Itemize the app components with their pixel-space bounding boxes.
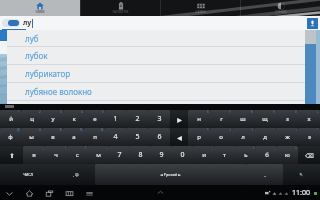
staticText: лубрикатор xyxy=(25,68,71,79)
staticText: 🔍 xyxy=(299,173,304,177)
staticText: т xyxy=(223,151,226,159)
button[interactable]: г xyxy=(210,110,232,128)
button[interactable]: 🔍 xyxy=(283,164,320,185)
button[interactable]: Recent apps xyxy=(43,187,55,199)
button[interactable]: о xyxy=(210,128,232,146)
staticText: ! xyxy=(65,146,66,150)
button[interactable]: х xyxy=(298,110,320,128)
button[interactable]: 5 xyxy=(126,128,148,146)
button[interactable]: Home xyxy=(23,187,35,199)
button[interactable]: н xyxy=(188,110,210,128)
staticText: 8 xyxy=(251,110,253,114)
button[interactable]: п xyxy=(84,128,105,146)
button[interactable]: 9 xyxy=(151,146,172,164)
button[interactable]: ч xyxy=(45,146,67,164)
staticText: ц xyxy=(30,115,34,123)
staticText: 7 xyxy=(229,110,231,114)
staticText: ж xyxy=(285,133,290,141)
button[interactable]: 1 xyxy=(105,110,126,128)
staticText: я xyxy=(32,151,36,159)
button[interactable]: у xyxy=(42,110,63,128)
button[interactable]: 8 xyxy=(130,146,151,164)
staticText: , xyxy=(212,146,213,150)
button[interactable]: ь xyxy=(235,146,256,164)
button[interactable]: HOME xyxy=(0,0,80,16)
button[interactable]: с xyxy=(67,146,88,164)
staticText: д xyxy=(263,133,267,141)
button[interactable]: Screenshot xyxy=(63,187,75,199)
button[interactable]: GAMES xyxy=(161,0,240,16)
button[interactable]: луб xyxy=(7,30,305,46)
button[interactable]: е xyxy=(84,110,105,128)
button[interactable]: р xyxy=(188,128,210,146)
button[interactable]: лубок xyxy=(7,47,305,64)
button[interactable]: й xyxy=(0,110,21,128)
button[interactable]: л xyxy=(232,128,254,146)
staticText: б xyxy=(265,151,269,159)
button[interactable]: Input language xyxy=(2,19,20,27)
button[interactable]: 4 xyxy=(105,128,126,146)
button[interactable]: ▶ xyxy=(170,110,188,128)
button[interactable]: 7 xyxy=(109,146,130,164)
button[interactable]: ж xyxy=(276,128,298,146)
button[interactable]: я xyxy=(23,146,45,164)
button[interactable]: лубяное волокно xyxy=(7,83,305,100)
button[interactable]: ы xyxy=(21,128,42,146)
staticText: ЧИСЛ xyxy=(23,172,33,177)
staticText: ю xyxy=(285,151,290,159)
button[interactable]: ⌫ xyxy=(298,146,320,164)
staticText: @ xyxy=(17,128,20,132)
button[interactable]: э xyxy=(298,128,320,146)
button[interactable]: т xyxy=(214,146,235,164)
staticText: 9 xyxy=(159,150,164,160)
staticText: 3 xyxy=(60,110,62,114)
staticText: ◄ Русский ► xyxy=(160,172,181,177)
button[interactable]: FAVORITES xyxy=(81,0,160,16)
button[interactable]: 3 xyxy=(148,110,170,128)
staticText: 11:00 xyxy=(292,188,310,198)
button[interactable]: 2 xyxy=(126,110,148,128)
button[interactable]: ◄ Русский ► xyxy=(95,164,246,185)
button[interactable]: лубрикатор xyxy=(7,65,305,82)
staticText: + xyxy=(317,110,319,114)
staticText: з xyxy=(286,115,289,123)
button[interactable]: а xyxy=(63,128,84,146)
button[interactable]: 0 xyxy=(172,146,193,164)
button[interactable]: з xyxy=(276,110,298,128)
staticText: ч xyxy=(54,151,58,159)
staticText: = xyxy=(295,146,297,150)
button[interactable]: , ☺ xyxy=(56,164,95,185)
button[interactable]: 6 xyxy=(148,128,170,146)
button[interactable]: м xyxy=(88,146,109,164)
staticText: ы xyxy=(29,133,34,141)
staticText: в xyxy=(51,133,55,141)
staticText: ⬆ xyxy=(9,152,15,159)
button[interactable]: ⬆ xyxy=(0,146,23,164)
button[interactable]: ю xyxy=(277,146,298,164)
button[interactable]: к xyxy=(63,110,84,128)
staticText: 5 xyxy=(135,132,140,142)
staticText: с xyxy=(76,151,79,159)
button[interactable]: Menu xyxy=(83,187,95,199)
staticText: _ xyxy=(274,146,276,150)
button[interactable]: б xyxy=(256,146,277,164)
button[interactable]: ш xyxy=(232,110,254,128)
staticText: ( xyxy=(230,128,231,132)
staticText: 4 xyxy=(113,132,118,142)
button[interactable]: Hide keyboard xyxy=(3,187,15,199)
button[interactable]: ф xyxy=(0,128,21,146)
button[interactable]: д xyxy=(254,128,276,146)
button[interactable]: ◀ xyxy=(170,128,188,146)
button[interactable]: щ xyxy=(254,110,276,128)
button[interactable]: . xyxy=(246,164,283,185)
button[interactable]: OTHERS xyxy=(241,0,320,16)
button[interactable]: и xyxy=(193,146,214,164)
button[interactable]: ц xyxy=(21,110,42,128)
staticText: л xyxy=(241,133,245,141)
staticText: ш xyxy=(240,115,246,123)
button[interactable]: Voice search xyxy=(307,18,318,29)
button[interactable]: в xyxy=(42,128,63,146)
button[interactable]: ЧИСЛ xyxy=(0,164,56,185)
staticText: # xyxy=(39,128,41,132)
staticText: 6 xyxy=(207,110,209,114)
